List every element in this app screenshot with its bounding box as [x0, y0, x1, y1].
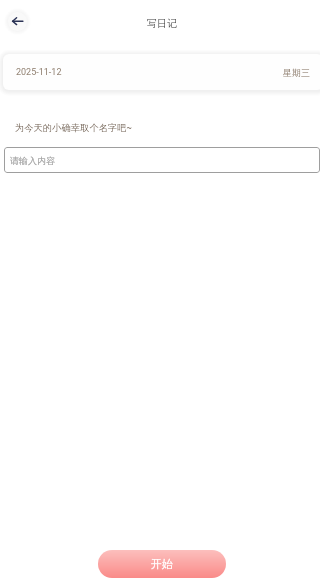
button[interactable]: 2025-11-12: [3, 54, 320, 90]
staticText: 为今天的小确幸取个名字吧~: [15, 121, 132, 134]
staticText: 2025-11-12: [16, 67, 62, 78]
button[interactable]: 请输入内容: [4, 147, 320, 173]
staticText: 写日记: [147, 17, 177, 30]
staticText: 请输入内容: [10, 155, 55, 166]
button[interactable]: Back: [8, 12, 27, 31]
button[interactable]: 开始: [98, 550, 226, 578]
staticText: 星期三: [283, 67, 310, 78]
staticText: 开始: [151, 557, 173, 571]
